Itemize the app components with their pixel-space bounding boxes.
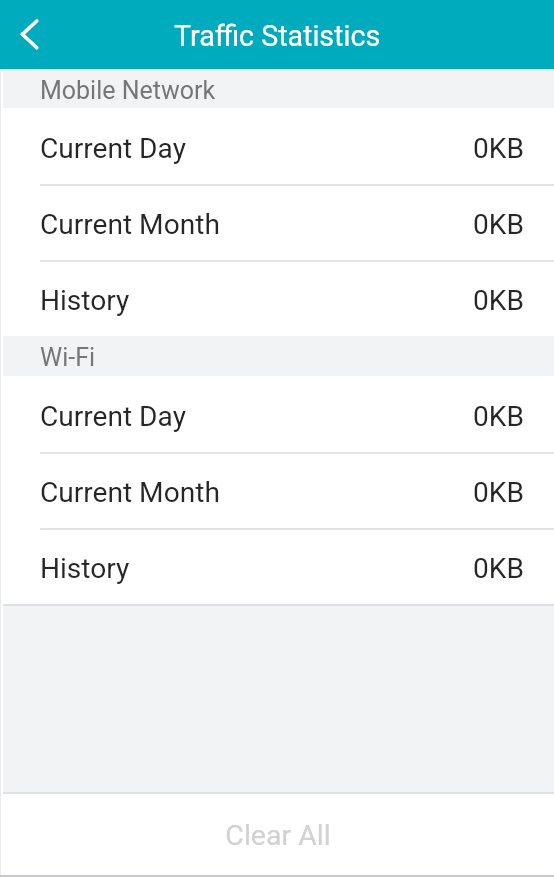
- staticText: Wi-Fi: [40, 343, 96, 372]
- staticText: 0KB: [473, 132, 524, 165]
- staticText: Mobile Network: [40, 76, 216, 105]
- staticText: 0KB: [473, 284, 524, 317]
- button[interactable]: Clear All: [0, 792, 554, 877]
- staticText: 0KB: [473, 476, 524, 509]
- button[interactable]: History: [0, 528, 554, 604]
- button[interactable]: History: [0, 260, 554, 336]
- staticText: Traffic Statistics: [174, 19, 381, 53]
- staticText: 0KB: [473, 552, 524, 585]
- button[interactable]: Current Month: [0, 452, 554, 528]
- staticText: 0KB: [473, 400, 524, 433]
- staticText: Current Day: [40, 132, 186, 165]
- button[interactable]: Back: [0, 0, 62, 69]
- staticText: Current Month: [40, 208, 220, 241]
- staticText: History: [40, 552, 130, 585]
- button[interactable]: Current Month: [0, 184, 554, 260]
- button[interactable]: Current Day: [0, 376, 554, 452]
- staticText: 0KB: [473, 208, 524, 241]
- staticText: Current Day: [40, 400, 186, 433]
- staticText: Current Month: [40, 476, 220, 509]
- button[interactable]: Current Day: [0, 108, 554, 184]
- staticText: Clear All: [225, 819, 331, 852]
- staticText: History: [40, 284, 130, 317]
